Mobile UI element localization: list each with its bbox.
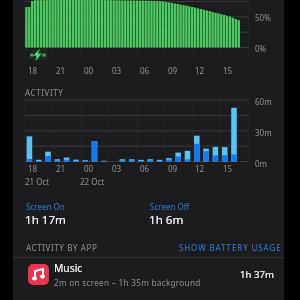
staticText: 18: [28, 65, 38, 76]
staticText: 00: [84, 163, 94, 174]
staticText: 15: [223, 163, 233, 174]
staticText: 15: [223, 65, 233, 76]
button[interactable]: Music: [13, 258, 284, 291]
staticText: 22 Oct: [80, 176, 105, 187]
staticText: 1h 17m: [25, 212, 66, 228]
staticText: 0%: [255, 43, 267, 54]
staticText: 06: [140, 163, 150, 174]
staticText: ACTIVITY: [25, 87, 64, 98]
staticText: ACTIVITY BY APP: [26, 242, 98, 253]
staticText: 09: [168, 65, 178, 76]
staticText: Music: [54, 261, 83, 275]
staticText: 21 Oct: [25, 176, 50, 187]
staticText: 1h 37m: [240, 268, 274, 281]
button[interactable]: SHOW BATTERY USAGE: [177, 238, 284, 257]
staticText: 21: [56, 65, 66, 76]
staticText: 03: [112, 163, 122, 174]
staticText: 00: [84, 65, 94, 76]
staticText: 12: [195, 65, 205, 76]
staticText: 50%: [255, 12, 271, 23]
staticText: 03: [112, 65, 122, 76]
staticText: 12: [195, 163, 205, 174]
staticText: 06: [140, 65, 150, 76]
staticText: 18: [28, 163, 38, 174]
staticText: 0m: [255, 158, 268, 169]
staticText: 09: [168, 163, 178, 174]
staticText: 30m: [255, 127, 272, 138]
other: Charging: [29, 48, 48, 61]
staticText: 21: [56, 163, 66, 174]
staticText: SHOW BATTERY USAGE: [179, 242, 282, 253]
staticText: Screen Off: [150, 201, 190, 212]
staticText: Screen On: [26, 201, 65, 212]
staticText: 60m: [255, 96, 272, 107]
staticText: 2m on screen – 1h 35m background: [54, 277, 201, 288]
staticText: 1h 6m: [149, 212, 184, 228]
